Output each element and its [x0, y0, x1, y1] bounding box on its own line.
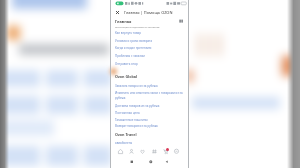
- staticText: Главная | Помощь OZON: [124, 10, 173, 15]
- button[interactable]: Таможенные пошлины: [115, 118, 184, 122]
- button[interactable]: Условия и сроки возврата: [115, 39, 184, 43]
- button[interactable]: Close: [114, 9, 121, 16]
- button[interactable]: Chat: [172, 147, 181, 156]
- button[interactable]: Favorites: [138, 147, 147, 156]
- staticText: Ozon Travel: [115, 132, 137, 137]
- staticText: Заказать товары из за рубежа: [115, 84, 158, 88]
- button[interactable]: Home: [147, 158, 154, 165]
- button[interactable]: Back: [163, 158, 170, 165]
- staticText: Когда я подал претензию: [115, 46, 152, 50]
- staticText: Проблемы с заказом: [115, 54, 145, 58]
- staticText: Доставка товаров из за рубежа: [115, 104, 160, 108]
- button[interactable]: Отправить спор: [115, 62, 184, 66]
- button[interactable]: Cart: [150, 147, 159, 156]
- button[interactable]: Проблемы с заказом: [115, 54, 184, 58]
- staticText: Ozon Global: [115, 74, 138, 79]
- button[interactable]: Как вернуть товар: [115, 31, 184, 35]
- button[interactable]: Возврат товаров из за рубежа: [115, 124, 184, 128]
- button[interactable]: Когда я подал претензию: [115, 46, 184, 50]
- staticText: Таможенные пошлины: [115, 118, 148, 122]
- staticText: авиабилеты: [115, 141, 133, 145]
- button[interactable]: Заказать товары из за рубежа: [115, 84, 184, 88]
- staticText: Отправить спор: [115, 62, 138, 66]
- button[interactable]: авиабилеты: [115, 141, 184, 145]
- staticText: Постоянная цена: [115, 111, 140, 115]
- button[interactable]: Catalog: [127, 147, 136, 156]
- staticText: Главная: [115, 19, 132, 24]
- staticText: Как вернуть товар: [115, 31, 142, 35]
- button[interactable]: Доставка товаров из за рубежа: [115, 104, 184, 108]
- button[interactable]: Изменить или отменить заказ с товарами и…: [115, 91, 184, 100]
- staticText: Изменить или отменить заказ с товарами и…: [115, 91, 184, 100]
- button[interactable]: Постоянная цена: [115, 111, 184, 115]
- staticText: Возврат товаров из за рубежа: [115, 124, 158, 128]
- button[interactable]: Orders: [161, 147, 170, 156]
- button[interactable]: Recents: [128, 158, 135, 165]
- button[interactable]: Search: [178, 18, 184, 24]
- staticText: Условия и сроки возврата: [115, 39, 153, 43]
- staticText: инструкции и подсказки от экспертов: [115, 25, 160, 28]
- button[interactable]: Home: [116, 147, 125, 156]
